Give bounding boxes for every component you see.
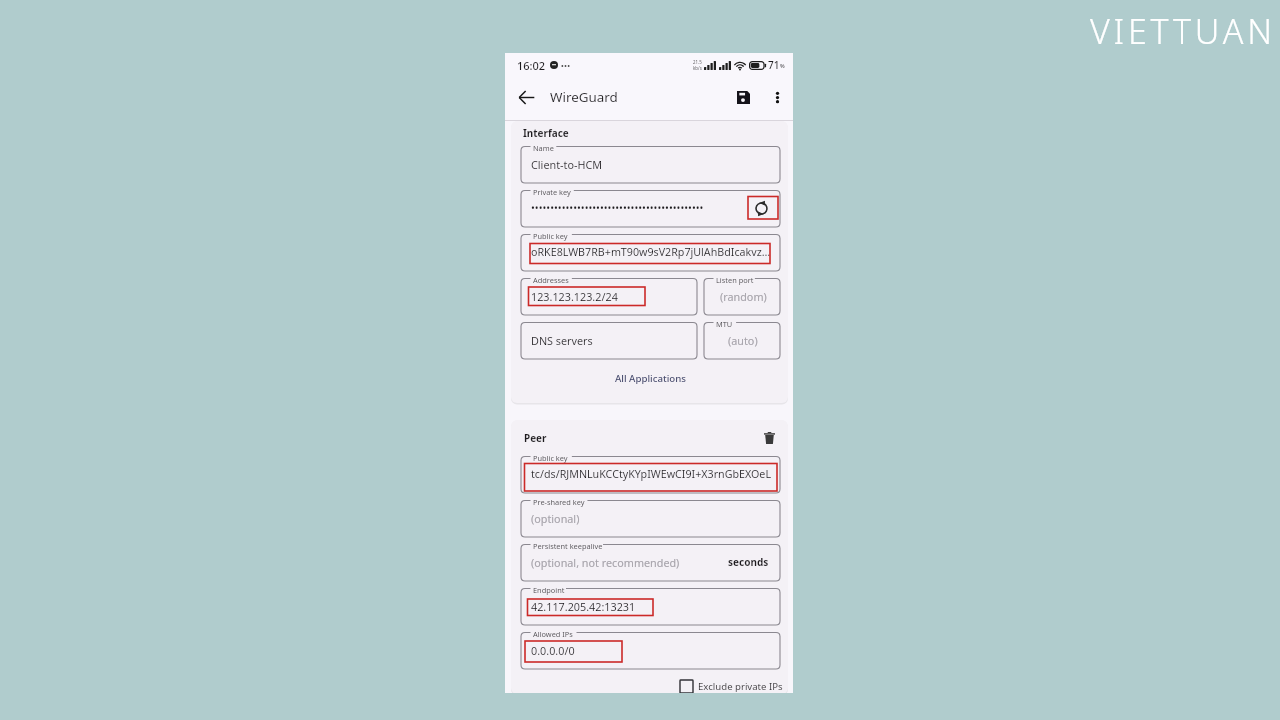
button[interactable]: Endpoint	[521, 583, 780, 625]
button[interactable]: DNS servers	[521, 317, 697, 359]
staticText: 0.0.0.0/0	[531, 643, 575, 658]
button[interactable]: Generate new key	[745, 197, 773, 219]
button[interactable]: Back	[512, 83, 540, 111]
button[interactable]: More options	[763, 83, 791, 111]
button[interactable]: Addresses	[521, 273, 697, 315]
staticText: (optional, not recommended)	[531, 555, 680, 570]
button[interactable]: MTU	[704, 317, 780, 359]
staticText: 123.123.123.2/24	[531, 289, 618, 304]
button[interactable]: Name	[521, 141, 780, 183]
staticText: Addresses	[533, 275, 569, 285]
staticText: Allowed IPs	[533, 629, 573, 639]
staticText: WireGuard	[550, 88, 618, 106]
button[interactable]: Save	[729, 83, 757, 111]
button[interactable]: Persistent keepalive	[521, 539, 780, 581]
staticText: Name	[533, 143, 554, 153]
staticText: Interface	[523, 126, 569, 139]
staticText: 42.117.205.42:13231	[531, 599, 636, 614]
staticText: Private key	[533, 187, 571, 197]
staticText: (random)	[720, 289, 767, 304]
staticText: (auto)	[728, 333, 758, 348]
staticText: Public key	[533, 453, 568, 463]
button[interactable]: Exclude private IPs	[524, 680, 783, 693]
staticText: ••••••••••••••••••••••••••••••••••••••••…	[531, 201, 704, 215]
staticText: 71	[768, 58, 780, 72]
staticText: VIETTUAN	[1090, 8, 1276, 54]
staticText: Client-to-HCM	[531, 157, 603, 172]
button[interactable]: Pre-shared key	[521, 495, 780, 537]
staticText: MTU	[716, 319, 733, 329]
staticText: All Applications	[615, 372, 687, 385]
staticText: Pre-shared key	[533, 497, 585, 507]
button[interactable]: All Applications	[521, 370, 780, 386]
button[interactable]: Public key	[521, 229, 780, 271]
staticText: 21.5	[693, 59, 702, 65]
button[interactable]: Private key	[521, 185, 780, 227]
staticText: %	[780, 62, 785, 69]
button[interactable]: Allowed IPs	[521, 627, 780, 669]
staticText: Exclude private IPs	[698, 680, 783, 693]
staticText: oRKE8LWB7RB+mT90w9sV2Rp7jUlAhBdIcakvz…	[531, 245, 771, 260]
staticText: Peer	[524, 431, 547, 444]
staticText: (optional)	[531, 511, 580, 526]
button[interactable]: Delete peer	[758, 427, 780, 449]
staticText: Public key	[533, 231, 568, 241]
staticText: 16:02	[517, 58, 546, 73]
staticText: kb/s	[693, 65, 702, 71]
staticText: tc/ds/RJMNLuKCCtyKYpIWEwCI9I+X3rnGbEXOeL	[531, 467, 771, 482]
button[interactable]: Listen port	[704, 273, 780, 315]
staticText: DNS servers	[531, 333, 593, 348]
staticText: Listen port	[716, 275, 754, 285]
staticText: Persistent keepalive	[533, 541, 603, 551]
staticText: Endpoint	[533, 585, 565, 595]
button[interactable]: Public key	[521, 451, 780, 493]
staticText: seconds	[728, 555, 769, 569]
